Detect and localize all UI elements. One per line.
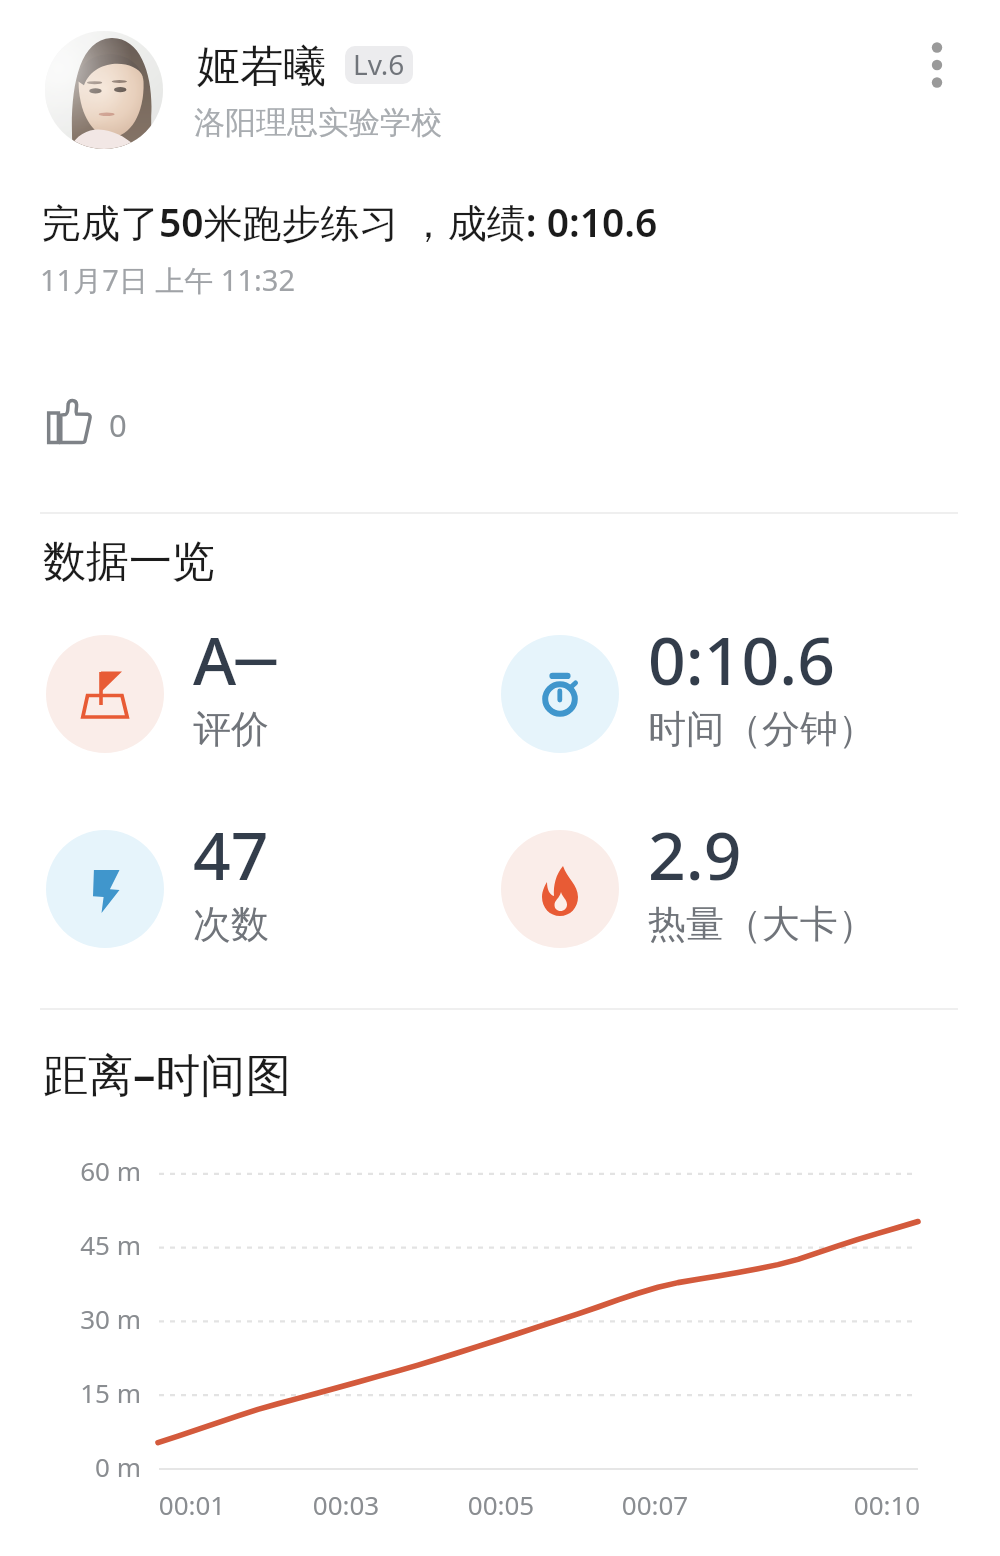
staticText: 次数 bbox=[193, 900, 269, 948]
staticText: 洛阳理思实验学校 bbox=[194, 103, 442, 142]
button[interactable]: More options bbox=[904, 20, 970, 110]
staticText: A─ bbox=[193, 614, 276, 704]
staticText: 完成了50米跑步练习 ，成绩: 0:10.6 bbox=[42, 195, 658, 248]
staticText: 15 m bbox=[0, 1375, 141, 1410]
staticText: 60 m bbox=[0, 1153, 141, 1188]
staticText: 0:10.6 bbox=[648, 614, 835, 704]
staticText: 数据一览 bbox=[43, 535, 215, 589]
button[interactable] bbox=[46, 632, 466, 756]
button[interactable] bbox=[501, 632, 921, 756]
button[interactable]: Profile photo bbox=[45, 31, 163, 149]
staticText: 30 m bbox=[0, 1301, 141, 1336]
staticText: 0 bbox=[109, 404, 127, 446]
staticText: 00:07 bbox=[595, 1487, 715, 1522]
staticText: 时间（分钟） bbox=[648, 705, 876, 753]
staticText: 热量（大卡） bbox=[648, 900, 876, 948]
staticText: 00:03 bbox=[286, 1487, 406, 1522]
staticText: 45 m bbox=[0, 1227, 141, 1262]
staticText: Lv.6 bbox=[353, 46, 405, 83]
button[interactable] bbox=[46, 827, 466, 951]
staticText: 00:05 bbox=[441, 1487, 561, 1522]
staticText: 0 m bbox=[0, 1449, 141, 1484]
button[interactable]: Level 6 bbox=[345, 46, 413, 84]
staticText: 47 bbox=[193, 809, 269, 899]
staticText: 2.9 bbox=[648, 809, 742, 899]
staticText: 姬若曦 bbox=[197, 40, 326, 94]
staticText: 00:10 bbox=[827, 1487, 947, 1522]
button[interactable] bbox=[501, 827, 921, 951]
staticText: 00:01 bbox=[132, 1487, 252, 1522]
staticText: 11月7日 上午 11:32 bbox=[40, 260, 295, 300]
staticText: 评价 bbox=[193, 705, 269, 753]
button[interactable]: 0 bbox=[40, 392, 127, 447]
staticText: 距离–时间图 bbox=[43, 1043, 291, 1104]
